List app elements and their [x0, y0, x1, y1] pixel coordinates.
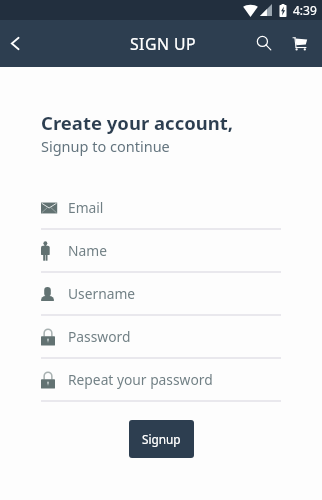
- button[interactable]: Username: [41, 273, 281, 316]
- staticText: Signup to continue: [41, 136, 170, 156]
- button[interactable]: Signup: [129, 420, 194, 458]
- staticText: Signup: [142, 431, 181, 447]
- button[interactable]: Search: [245, 20, 283, 67]
- staticText: Repeat your password: [68, 370, 213, 389]
- staticText: Password: [68, 327, 131, 346]
- button[interactable]: Email: [41, 187, 281, 230]
- staticText: Email: [68, 198, 104, 217]
- staticText: Create your account,: [41, 110, 234, 135]
- button[interactable]: Shopping cart: [283, 20, 317, 67]
- staticText: Username: [68, 284, 136, 303]
- staticText: 4:39: [293, 2, 317, 18]
- button[interactable]: Repeat your password: [41, 359, 281, 402]
- staticText: Name: [68, 241, 107, 260]
- button[interactable]: Back: [0, 20, 30, 67]
- staticText: SIGN UP: [130, 33, 196, 55]
- button[interactable]: Name: [41, 230, 281, 273]
- button[interactable]: Password: [41, 316, 281, 359]
